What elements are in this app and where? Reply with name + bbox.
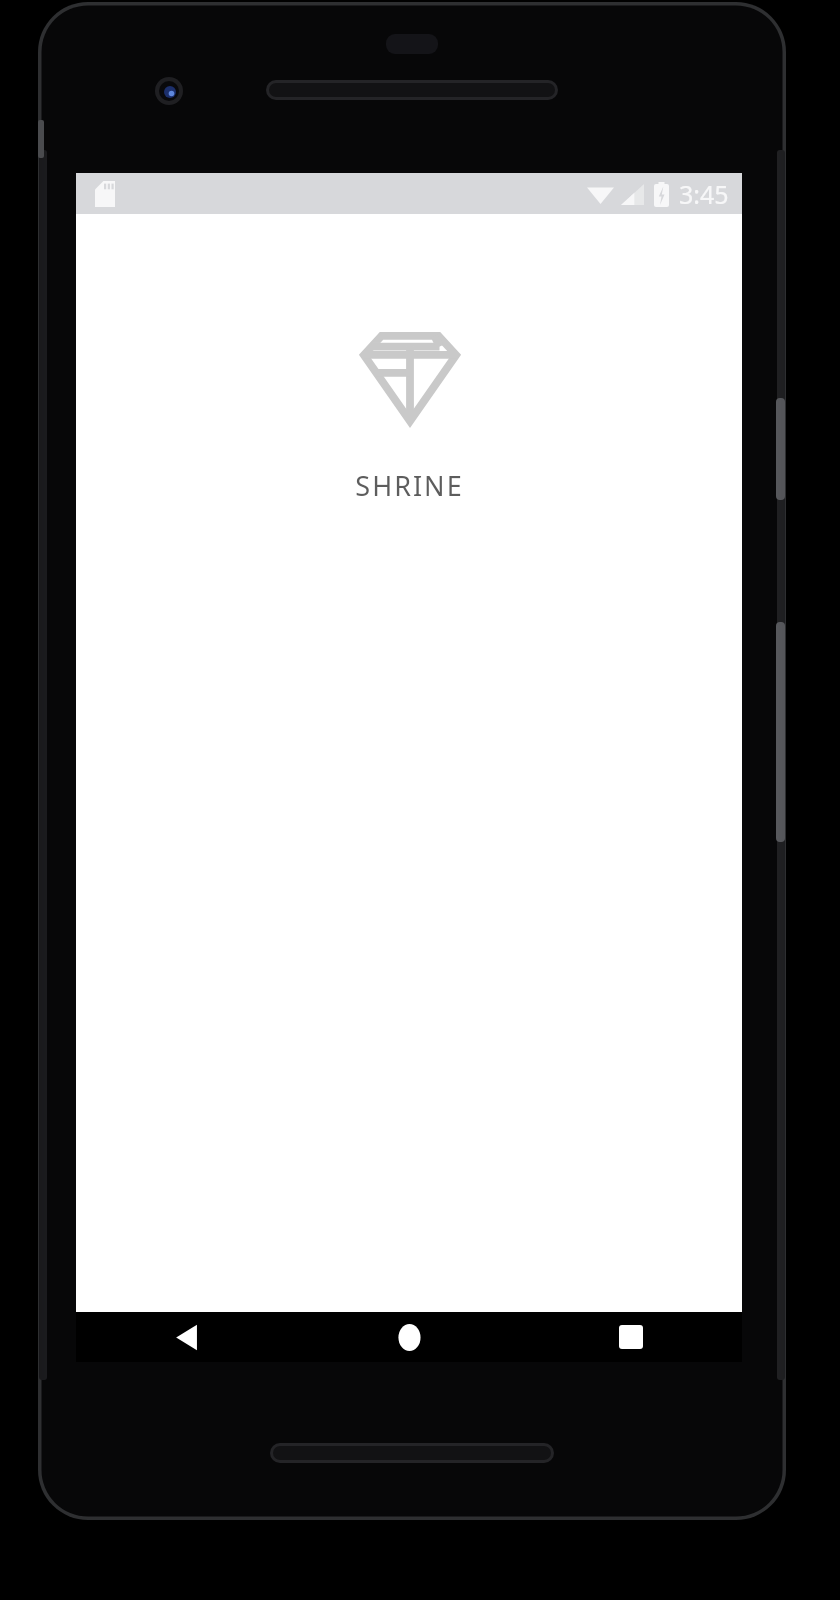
button[interactable]: Home — [298, 1312, 520, 1362]
other: Wi-Fi — [587, 184, 614, 204]
staticText: SHRINE — [355, 467, 464, 504]
button[interactable]: Recent apps — [520, 1312, 742, 1362]
other: SD card — [95, 181, 115, 207]
staticText: 3:45 — [679, 177, 729, 211]
other: Battery charging — [654, 182, 669, 207]
other: Mobile signal — [621, 184, 644, 205]
button[interactable]: Back — [76, 1312, 298, 1362]
